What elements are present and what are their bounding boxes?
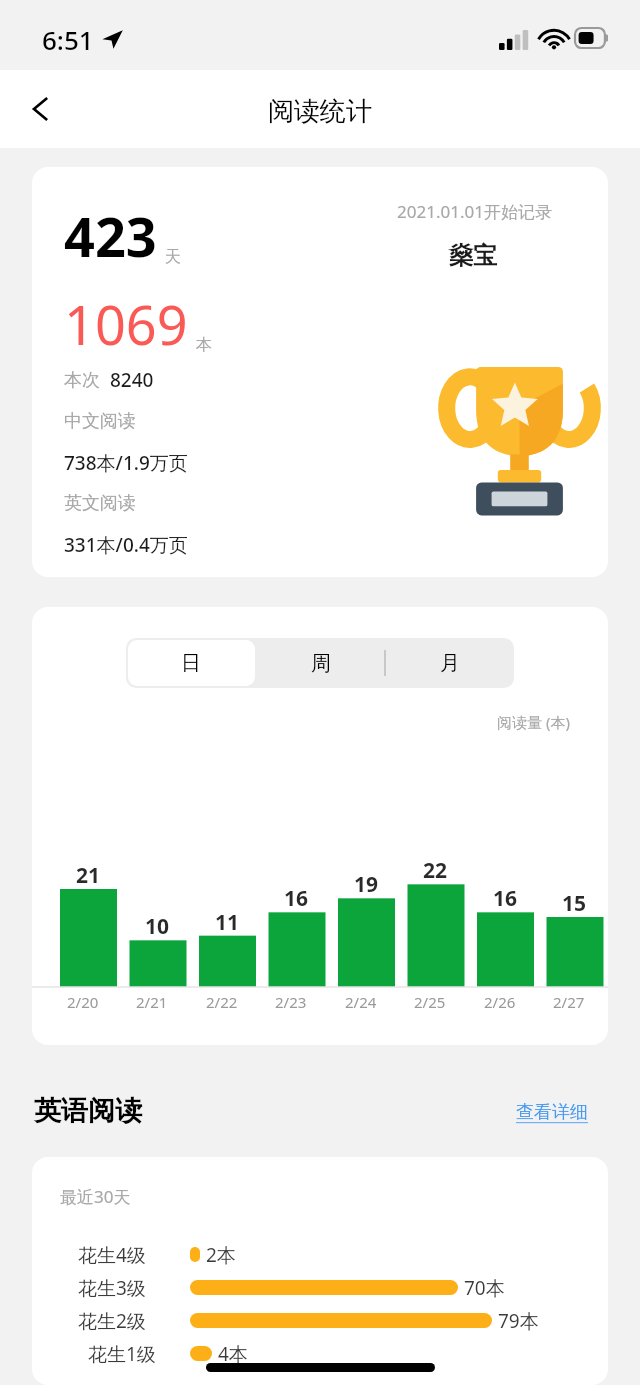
staticText: 10 (145, 912, 170, 941)
staticText: 查看详细 (516, 1101, 588, 1124)
staticText: 738本/1.9万页 (64, 450, 188, 476)
staticText: 70本 (464, 1275, 505, 1301)
staticText: 19 (354, 870, 379, 899)
staticText: 423 (64, 199, 157, 273)
staticText: 11 (215, 908, 240, 937)
staticText: 1069 (64, 287, 188, 361)
staticText: 花生1级 (88, 1341, 156, 1367)
staticText: 阅读统计 (268, 95, 372, 128)
staticText: 15 (562, 889, 587, 918)
staticText: 花生3级 (78, 1275, 146, 1301)
staticText: 花生2级 (78, 1308, 146, 1334)
button[interactable]: 英语阅读 (30, 1090, 146, 1132)
staticText: 燊宝 (449, 241, 497, 271)
staticText: 花生4级 (78, 1242, 146, 1268)
button[interactable]: 查看详细 (510, 1095, 594, 1130)
staticText: 2/24 (345, 992, 377, 1012)
staticText: 79本 (498, 1308, 539, 1334)
staticText: 22 (423, 856, 448, 885)
staticText: 最近30天 (60, 1185, 131, 1208)
staticText: 月 (440, 651, 460, 676)
staticText: 中文阅读 (64, 410, 136, 433)
staticText: 2/23 (275, 992, 307, 1012)
staticText: 阅读量 (本) (497, 712, 570, 732)
staticText: 2/25 (414, 992, 446, 1012)
staticText: 本 (196, 335, 212, 355)
staticText: 331本/0.4万页 (64, 532, 188, 558)
button[interactable]: 周 (256, 638, 385, 688)
staticText: 16 (284, 884, 309, 913)
button[interactable]: 月 (385, 638, 514, 688)
staticText: 2/26 (484, 992, 516, 1012)
button[interactable]: 日 (126, 638, 256, 688)
staticText: 2021.01.01开始记录 (397, 200, 552, 223)
staticText: 周 (311, 651, 331, 676)
staticText: 16 (493, 884, 518, 913)
staticText: 6:51 (42, 22, 94, 57)
staticText: 日 (181, 651, 201, 676)
staticText: 2/27 (553, 992, 585, 1012)
staticText: 4本 (218, 1341, 248, 1367)
staticText: 2本 (206, 1242, 236, 1268)
staticText: 英语阅读 (34, 1094, 142, 1128)
staticText: 天 (165, 247, 181, 267)
staticText: 2/21 (136, 992, 168, 1012)
button[interactable]: Back (14, 82, 68, 136)
staticText: 2/22 (206, 992, 238, 1012)
staticText: 本次 (64, 369, 100, 392)
staticText: 英文阅读 (64, 492, 136, 515)
staticText: 2/20 (67, 992, 99, 1012)
staticText: 21 (76, 861, 101, 890)
staticText: 8240 (110, 367, 154, 393)
